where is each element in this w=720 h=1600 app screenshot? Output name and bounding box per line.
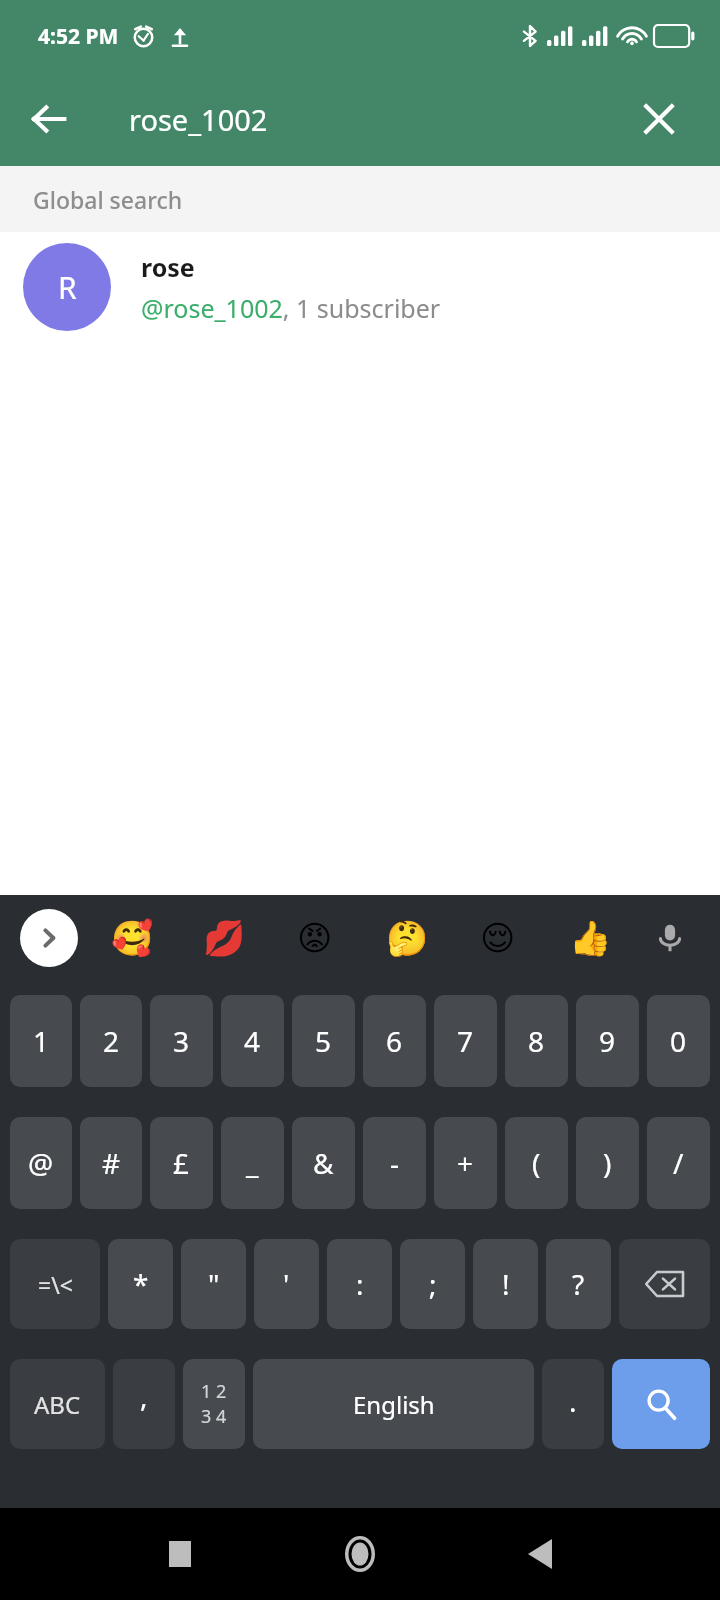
- button[interactable]: Home: [330, 1524, 390, 1584]
- staticText: 5: [315, 1022, 332, 1060]
- staticText: .: [569, 1382, 577, 1420]
- staticText: 8: [528, 1022, 545, 1060]
- staticText: ,: [140, 1377, 148, 1415]
- staticText: 💋: [203, 918, 246, 958]
- staticText: 😡: [297, 918, 333, 958]
- button[interactable]: Voice input: [642, 910, 698, 966]
- button[interactable]: Search: [612, 1359, 710, 1449]
- staticText: 1 2: [201, 1379, 227, 1404]
- button[interactable]: *: [108, 1239, 173, 1329]
- staticText: !: [502, 1265, 510, 1303]
- button[interactable]: 6: [363, 995, 426, 1087]
- staticText: £: [173, 1144, 190, 1182]
- staticText: +: [457, 1144, 474, 1182]
- button[interactable]: (: [505, 1117, 568, 1209]
- button[interactable]: ?: [546, 1239, 611, 1329]
- staticText: 😌: [480, 918, 516, 958]
- staticText: 3 4: [201, 1404, 227, 1429]
- button[interactable]: 🤔: [376, 907, 438, 969]
- button[interactable]: 2: [80, 995, 142, 1087]
- button[interactable]: 💋: [193, 907, 255, 969]
- button[interactable]: /: [647, 1117, 710, 1209]
- staticText: 0: [670, 1022, 687, 1060]
- staticText: ': [283, 1265, 290, 1303]
- button[interactable]: English: [253, 1359, 534, 1449]
- staticText: :: [356, 1265, 364, 1303]
- button[interactable]: Backspace: [619, 1239, 710, 1329]
- button[interactable]: Clear: [624, 84, 694, 154]
- button[interactable]: Back: [510, 1524, 570, 1584]
- button[interactable]: 🥰: [101, 907, 163, 969]
- button[interactable]: !: [473, 1239, 538, 1329]
- button[interactable]: ,: [113, 1359, 175, 1449]
- button[interactable]: &: [292, 1117, 355, 1209]
- button[interactable]: .: [542, 1359, 604, 1449]
- staticText: (: [532, 1144, 541, 1182]
- staticText: 7: [457, 1022, 474, 1060]
- button[interactable]: 3: [150, 995, 213, 1087]
- button[interactable]: 9: [576, 995, 639, 1087]
- staticText: @rose_1002, 1 subscriber: [141, 291, 441, 325]
- button[interactable]: 😡: [284, 907, 346, 969]
- staticText: 1: [33, 1022, 50, 1060]
- button[interactable]: ": [181, 1239, 246, 1329]
- staticText: =\<: [38, 1269, 73, 1300]
- staticText: ): [603, 1144, 612, 1182]
- staticText: 🥰: [111, 918, 154, 958]
- staticText: 🤔: [386, 918, 429, 958]
- button[interactable]: 4: [221, 995, 284, 1087]
- button[interactable]: @: [10, 1117, 72, 1209]
- button[interactable]: #: [80, 1117, 142, 1209]
- staticText: ;: [429, 1265, 437, 1303]
- button[interactable]: ): [576, 1117, 639, 1209]
- staticText: &: [313, 1144, 334, 1182]
- staticText: ABC: [34, 1388, 81, 1421]
- button[interactable]: 😌: [467, 907, 529, 969]
- button[interactable]: -: [363, 1117, 426, 1209]
- button[interactable]: 👍: [559, 907, 621, 969]
- staticText: 2: [103, 1022, 120, 1060]
- button[interactable]: +: [434, 1117, 497, 1209]
- button[interactable]: =\<: [10, 1239, 100, 1329]
- button[interactable]: Numbers: [183, 1359, 245, 1449]
- button[interactable]: :: [327, 1239, 392, 1329]
- staticText: R: [58, 267, 77, 308]
- staticText: 👍: [569, 918, 612, 958]
- staticText: @: [28, 1144, 54, 1182]
- button[interactable]: Recent apps: [150, 1524, 210, 1584]
- button[interactable]: _: [221, 1117, 284, 1209]
- button[interactable]: R: [0, 232, 720, 342]
- staticText: #: [102, 1144, 121, 1182]
- button[interactable]: ': [254, 1239, 319, 1329]
- staticText: -: [390, 1144, 400, 1182]
- button[interactable]: 7: [434, 995, 497, 1087]
- staticText: 9: [599, 1022, 616, 1060]
- staticText: _: [246, 1144, 259, 1182]
- staticText: ?: [572, 1265, 585, 1303]
- button[interactable]: ;: [400, 1239, 465, 1329]
- button[interactable]: £: [150, 1117, 213, 1209]
- staticText: 6: [386, 1022, 403, 1060]
- button[interactable]: ABC: [10, 1359, 105, 1449]
- staticText: rose_1002: [129, 100, 268, 139]
- button[interactable]: Back: [14, 84, 84, 154]
- button[interactable]: 1: [10, 995, 72, 1087]
- staticText: *: [133, 1265, 149, 1303]
- button[interactable]: 8: [505, 995, 568, 1087]
- staticText: 4: [244, 1022, 261, 1060]
- staticText: Global search: [33, 184, 183, 215]
- button[interactable]: More emoji: [20, 909, 78, 967]
- staticText: 3: [173, 1022, 190, 1060]
- staticText: English: [353, 1388, 435, 1421]
- staticText: /: [673, 1144, 684, 1182]
- staticText: rose: [141, 250, 195, 284]
- button[interactable]: 5: [292, 995, 355, 1087]
- staticText: 4:52 PM: [38, 22, 119, 51]
- button[interactable]: 0: [647, 995, 710, 1087]
- staticText: ": [208, 1265, 220, 1303]
